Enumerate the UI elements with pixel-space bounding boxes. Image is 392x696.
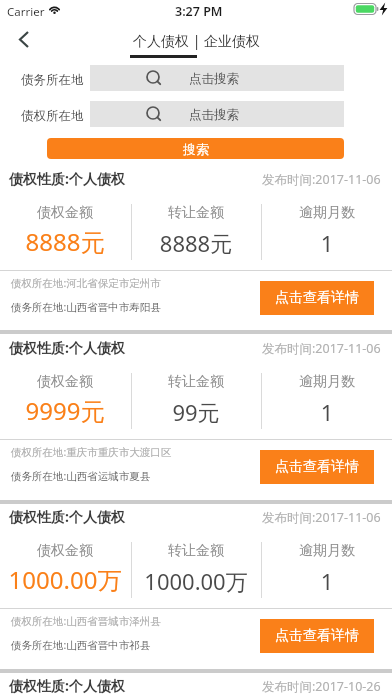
staticText: 1 [227,228,392,258]
staticText: 发布时间:2017-11-06 [262,340,381,357]
staticText: 债权性质:个人债权 [9,676,125,695]
staticText: 点击查看详情 [275,627,359,645]
staticText: 1000.00万 [96,566,296,596]
staticText: 逾期月数 [247,542,392,560]
button[interactable]: 债权性质:个人债权 [0,669,392,696]
button[interactable]: 点击搜索 [90,65,344,91]
staticText: 1000.00万 [0,563,165,596]
button[interactable]: 债权性质:个人债权 [0,331,392,500]
staticText: 债权所在地:山西省晋城市泽州县 [11,614,161,628]
staticText: 8888元 [96,228,296,258]
staticText: 3:27 PM [175,3,223,20]
staticText: 发布时间:2017-10-26 [262,678,381,695]
staticText: 转让金额 [116,542,276,560]
staticText: 9999元 [0,394,165,427]
staticText: 债权性质:个人债权 [9,338,125,357]
button[interactable]: 债权性质:个人债权 [0,162,392,331]
staticText: 99元 [96,397,296,427]
staticText: 债权所在地:河北省保定市定州市 [11,276,161,290]
staticText: 逾期月数 [247,204,392,222]
staticText: 个人债权 | 企业债权 [133,31,260,50]
button[interactable]: 债权性质:个人债权 [0,500,392,669]
staticText: 债务所在地 [21,72,84,88]
staticText: 债权金额 [0,542,145,560]
staticText: 债权金额 [0,373,145,391]
staticText: 债务所在地:山西省晋中市祁县 [11,638,151,652]
staticText: 债务所在地:山西省晋中市寿阳县 [11,300,161,314]
button[interactable]: Back [0,22,48,60]
button[interactable]: 搜索 [47,138,344,159]
staticText: Carrier [7,4,45,20]
staticText: 债权性质:个人债权 [9,169,125,188]
staticText: 点击搜索 [189,107,239,123]
staticText: 点击搜索 [189,71,239,87]
staticText: 逾期月数 [247,373,392,391]
staticText: 转让金额 [116,204,276,222]
staticText: 债务所在地:山西省运城市夏县 [11,469,151,483]
staticText: 债权金额 [0,204,145,222]
staticText: 搜索 [183,141,209,157]
button[interactable]: 点击查看详情 [260,450,374,484]
staticText: 发布时间:2017-11-06 [262,171,381,188]
staticText: 债权所在地 [21,108,84,124]
button[interactable]: 点击搜索 [90,101,344,127]
staticText: 8888元 [0,225,165,258]
staticText: 债权所在地:重庆市重庆市大渡口区 [11,445,172,459]
staticText: 1 [227,397,392,427]
staticText: 债权性质:个人债权 [9,507,125,526]
button[interactable]: 点击查看详情 [260,619,374,653]
staticText: 点击查看详情 [275,289,359,307]
staticText: 发布时间:2017-11-06 [262,509,381,526]
staticText: 1 [227,566,392,596]
staticText: 点击查看详情 [275,458,359,476]
staticText: 转让金额 [116,373,276,391]
button[interactable]: 点击查看详情 [260,281,374,315]
